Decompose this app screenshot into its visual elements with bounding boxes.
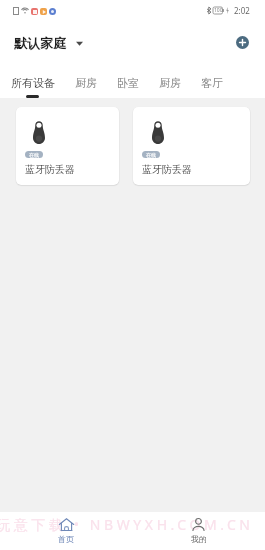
staticText: 在线 — [146, 152, 156, 158]
staticText: 所有设备 — [11, 76, 55, 90]
staticText: 在线 — [29, 152, 39, 158]
button[interactable]: 客厅 — [201, 64, 223, 98]
button[interactable]: 所有设备 — [11, 64, 75, 98]
staticText: 首页 — [58, 534, 74, 544]
button[interactable]: 默认家庭 — [14, 31, 83, 55]
staticText: 客厅 — [201, 76, 223, 90]
staticText: 厨房 — [159, 76, 181, 90]
button[interactable]: 厨房 — [75, 64, 117, 98]
staticText: 卧室 — [117, 76, 139, 90]
button[interactable]: 首页 — [0, 512, 132, 550]
staticText: 100 — [214, 7, 223, 14]
staticText: 我的 — [191, 534, 207, 544]
staticText: 2:02 — [234, 5, 250, 16]
staticText: 默认家庭 — [14, 35, 66, 51]
button[interactable]: 在线 — [133, 107, 250, 185]
button[interactable]: 厨房 — [159, 64, 201, 98]
staticText: 蓝牙防丢器 — [25, 163, 75, 176]
staticText: 蓝牙防丢器 — [142, 163, 192, 176]
button[interactable]: 我的 — [132, 512, 265, 550]
staticText: 厨房 — [75, 76, 97, 90]
button[interactable]: Add device — [236, 36, 249, 49]
staticText: 玩意下载 • NBWYXH.COM.CN — [0, 515, 254, 534]
button[interactable]: 在线 — [16, 107, 119, 185]
button[interactable]: 卧室 — [117, 64, 159, 98]
